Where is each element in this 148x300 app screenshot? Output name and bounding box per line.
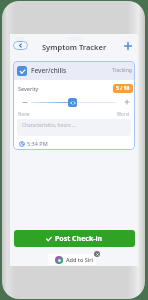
staticText: Post Check-in: [55, 234, 103, 244]
button[interactable]: Severity slider: [68, 98, 77, 107]
button[interactable]: Dismiss: [94, 251, 100, 257]
staticText: 5:34 PM: [27, 140, 48, 147]
staticText: 4:58: [15, 36, 24, 42]
staticText: Add to Siri: [66, 256, 94, 263]
staticText: Symptom Tracker: [42, 42, 107, 52]
button[interactable]: Back: [13, 41, 28, 50]
staticText: 5 / 10: [116, 85, 130, 92]
staticText: None: [18, 111, 30, 117]
staticText: Tracking: [112, 67, 132, 74]
button[interactable]: 5:34 PM: [19, 140, 48, 147]
button[interactable]: Add to Siri: [48, 254, 96, 265]
staticText: Worst: [117, 111, 130, 117]
button[interactable]: Characteristics, hours ...: [17, 119, 131, 136]
staticText: Severity: [18, 85, 39, 92]
button[interactable]: Post Check-in: [14, 230, 135, 247]
staticText: Characteristics, hours ...: [22, 122, 76, 129]
button[interactable]: Add: [122, 40, 134, 52]
staticText: Fever/chills: [31, 66, 67, 75]
button[interactable]: Fever/chills: [17, 61, 132, 80]
